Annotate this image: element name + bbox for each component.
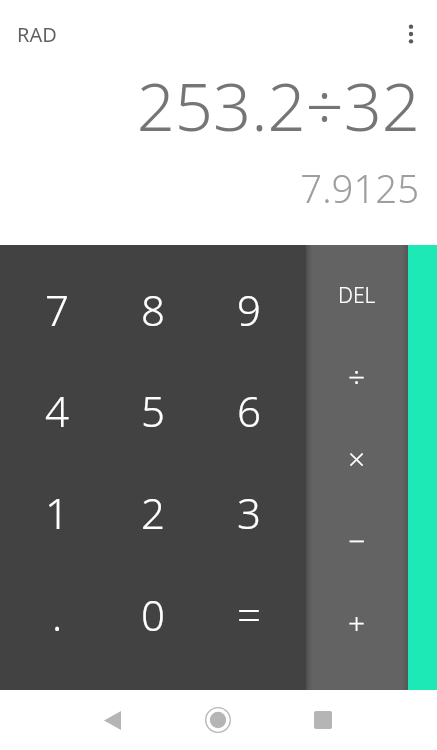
button[interactable]: More options [389, 12, 433, 56]
staticText: = [237, 586, 261, 643]
button[interactable]: ÷ [306, 336, 408, 417]
button[interactable]: 5 [105, 360, 201, 461]
staticText: 9 [237, 281, 261, 338]
button[interactable]: RAD [11, 17, 63, 52]
button[interactable]: 7 [9, 259, 105, 360]
button[interactable]: + [306, 581, 408, 663]
button[interactable]: 3 [201, 461, 297, 563]
button[interactable]: 2 [105, 461, 201, 563]
staticText: 6 [237, 382, 261, 439]
staticText: 1 [45, 484, 69, 541]
button[interactable]: × [306, 417, 408, 499]
staticText: 5 [141, 382, 165, 439]
button[interactable]: Back [88, 696, 136, 744]
button[interactable]: 4 [9, 360, 105, 461]
button[interactable]: − [306, 499, 408, 581]
staticText: 2 [141, 484, 165, 541]
staticText: DEL [338, 281, 376, 310]
button[interactable]: 0 [105, 563, 201, 665]
button[interactable]: Home [194, 696, 242, 744]
staticText: . [52, 586, 63, 643]
button[interactable]: 8 [105, 259, 201, 360]
staticText: 253.2÷32 [136, 60, 420, 151]
staticText: 0 [141, 586, 165, 643]
staticText: 7 [45, 281, 69, 338]
staticText: 4 [45, 382, 69, 439]
staticText: 3 [237, 484, 261, 541]
button[interactable]: 1 [9, 461, 105, 563]
staticText: + [348, 602, 366, 643]
button[interactable]: 6 [201, 360, 297, 461]
staticText: 8 [141, 281, 165, 338]
staticText: 7.9125 [300, 162, 419, 214]
button[interactable]: 9 [201, 259, 297, 360]
staticText: − [348, 520, 366, 561]
button[interactable]: . [9, 563, 105, 665]
button[interactable]: = [201, 563, 297, 665]
staticText: × [348, 438, 366, 479]
button[interactable]: DEL [306, 255, 408, 336]
staticText: RAD [17, 21, 57, 48]
staticText: ÷ [348, 356, 366, 397]
button[interactable]: Recents [299, 696, 347, 744]
